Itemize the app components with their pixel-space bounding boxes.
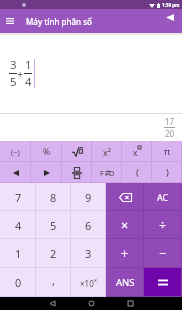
staticText: 5 <box>10 74 17 90</box>
button[interactable]: AC <box>144 183 182 211</box>
staticText: 3 <box>10 57 17 73</box>
button[interactable]: (−) <box>0 141 31 162</box>
button[interactable]: ANS <box>106 268 144 297</box>
button[interactable]: 6 <box>71 211 106 239</box>
staticText: ( <box>136 166 139 179</box>
button[interactable]: F <box>92 162 122 183</box>
button[interactable]: × <box>106 211 144 239</box>
staticText: + <box>121 245 129 262</box>
button[interactable] <box>6 18 14 24</box>
button[interactable] <box>50 301 55 306</box>
staticText: 4 <box>25 74 32 90</box>
staticText: 1 <box>25 57 32 73</box>
staticText: π <box>164 145 171 158</box>
staticText: 2 <box>50 246 57 261</box>
button[interactable] <box>62 141 92 162</box>
button[interactable]: 3 <box>71 239 106 268</box>
staticText: 0 <box>15 275 22 290</box>
button[interactable]: 2 <box>36 239 71 268</box>
staticText: 7 <box>15 190 22 205</box>
staticText: ) <box>166 166 169 179</box>
staticText: F <box>100 168 104 178</box>
staticText: + <box>17 66 24 81</box>
button[interactable] <box>31 162 62 183</box>
staticText: AC <box>157 191 169 203</box>
button[interactable]: 1 <box>0 239 36 268</box>
staticText: 5 <box>50 218 57 233</box>
staticText: 4 <box>15 218 22 233</box>
staticText: 1 <box>15 246 22 261</box>
staticText: × <box>121 217 129 234</box>
staticText: − <box>159 245 167 262</box>
button[interactable]: π <box>152 141 182 162</box>
button[interactable]: 5 <box>36 211 71 239</box>
button[interactable]: 4 <box>0 211 36 239</box>
button[interactable] <box>0 162 31 183</box>
staticText: 8 <box>50 190 57 205</box>
button[interactable] <box>106 183 144 211</box>
button[interactable]: ) <box>152 162 182 183</box>
staticText: x² <box>103 146 111 158</box>
button[interactable]: x² <box>92 141 122 162</box>
button[interactable]: 7 <box>0 183 36 211</box>
staticText: 17 <box>165 116 175 127</box>
button[interactable]: x <box>122 141 152 162</box>
staticText: % <box>43 146 51 158</box>
staticText: x <box>94 276 97 283</box>
button[interactable] <box>62 162 92 183</box>
staticText: 3 <box>85 246 92 261</box>
staticText: ÷ <box>159 217 167 234</box>
button[interactable]: 0 <box>0 268 36 297</box>
button[interactable] <box>144 268 182 297</box>
button[interactable] <box>128 301 133 306</box>
staticText: ×10 <box>80 278 94 289</box>
staticText: ANS <box>116 276 135 289</box>
button[interactable]: ×10 <box>71 268 106 297</box>
staticText: Máy tính phân số <box>26 16 92 27</box>
button[interactable] <box>166 14 174 21</box>
staticText: 1:39 pm <box>162 2 180 8</box>
staticText: (−) <box>11 147 20 157</box>
button[interactable]: ( <box>122 162 152 183</box>
button[interactable]: ÷ <box>144 211 182 239</box>
button[interactable]: − <box>144 239 182 268</box>
button[interactable]: % <box>31 141 62 162</box>
staticText: D <box>109 168 115 178</box>
staticText: 20 <box>165 128 175 139</box>
button[interactable]: , <box>36 268 71 297</box>
button[interactable] <box>89 301 94 306</box>
button[interactable]: 9 <box>71 183 106 211</box>
staticText: , <box>52 273 55 288</box>
button[interactable]: 8 <box>36 183 71 211</box>
staticText: 9 <box>85 190 92 205</box>
staticText: x <box>133 147 138 159</box>
button[interactable]: + <box>106 239 144 268</box>
staticText: 6 <box>85 218 92 233</box>
